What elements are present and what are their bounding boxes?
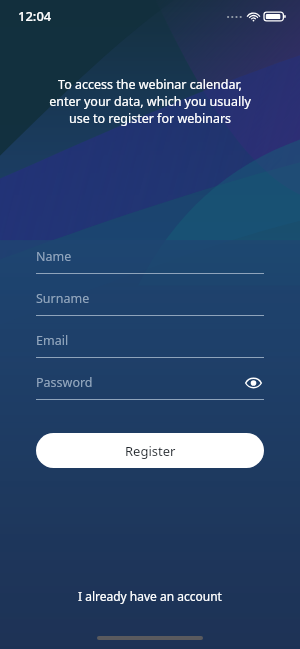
button[interactable]: Email <box>36 324 264 366</box>
button[interactable]: Register <box>36 433 264 468</box>
button[interactable]: Password <box>36 366 264 408</box>
staticText: Surname <box>36 290 90 307</box>
button[interactable]: Surname <box>36 282 264 324</box>
staticText: Password <box>36 374 93 391</box>
staticText: Register <box>125 442 176 460</box>
staticText: To access the webinar calendar, enter yo… <box>49 76 251 127</box>
staticText: 12:04 <box>18 7 52 25</box>
button[interactable]: Name <box>36 240 264 282</box>
staticText: I already have an account <box>78 588 222 604</box>
staticText: Name <box>36 248 72 265</box>
button[interactable]: Show password <box>242 372 264 394</box>
staticText: Email <box>36 332 69 349</box>
button[interactable]: I already have an account <box>0 582 300 610</box>
